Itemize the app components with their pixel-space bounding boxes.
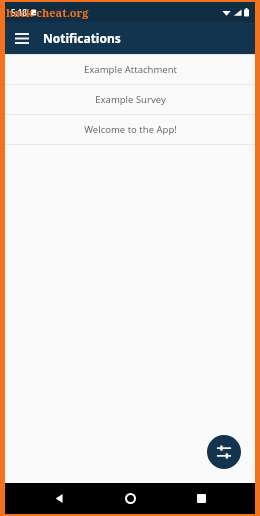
button[interactable]: Recent apps (184, 483, 218, 514)
staticText: 5:18 (11, 7, 27, 18)
button[interactable]: Home (113, 483, 147, 514)
button[interactable]: Example Attachment (5, 55, 255, 84)
staticText: Example Survey (95, 93, 166, 106)
button[interactable]: Back (42, 483, 76, 514)
staticText: Welcome to the App! (84, 123, 177, 136)
staticText: Example Attachment (84, 63, 177, 76)
button[interactable]: Open navigation drawer (9, 25, 35, 51)
staticText: hack-cheat.org (6, 5, 89, 20)
button[interactable]: Welcome to the App! (5, 115, 255, 144)
button[interactable]: Example Survey (5, 85, 255, 114)
staticText: Notifications (43, 30, 121, 46)
button[interactable]: Filter settings (207, 435, 241, 469)
